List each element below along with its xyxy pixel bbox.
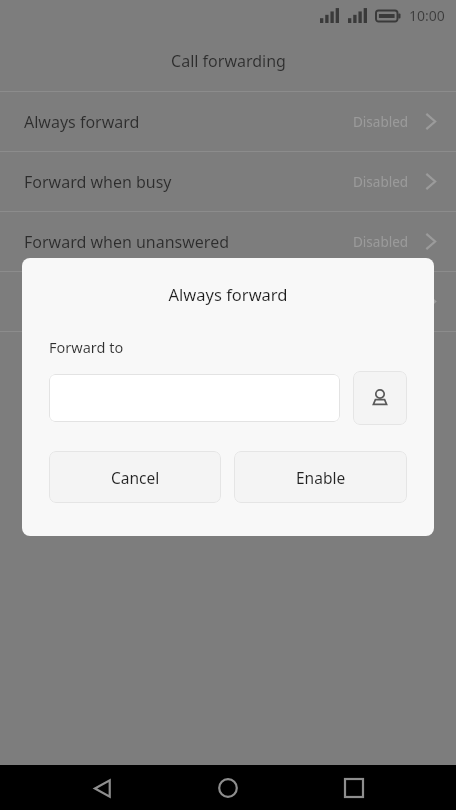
- button[interactable]: Recent apps: [332, 766, 376, 810]
- button[interactable]: Forward when unanswered: [0, 212, 456, 271]
- staticText: Forward when busy: [24, 171, 172, 193]
- button[interactable]: Cancel: [49, 451, 221, 503]
- staticText: Forward when unanswered: [24, 231, 230, 253]
- button[interactable]: Enable: [234, 451, 407, 503]
- button[interactable]: Always forward: [0, 92, 456, 151]
- button[interactable]: Forward when busy: [0, 152, 456, 211]
- staticText: Cancel: [111, 467, 160, 488]
- button[interactable]: [0, 272, 456, 331]
- button[interactable]: Home: [206, 766, 250, 810]
- staticText: Always forward: [24, 111, 140, 133]
- staticText: Disabled: [353, 113, 409, 131]
- button[interactable]: Choose contact: [353, 371, 407, 425]
- button[interactable]: Back: [80, 766, 124, 810]
- staticText: Always forward: [22, 283, 434, 305]
- staticText: Enable: [296, 467, 346, 488]
- button[interactable]: Forward to number: [49, 374, 340, 422]
- staticText: Disabled: [353, 173, 409, 191]
- staticText: 10:00: [409, 6, 445, 25]
- staticText: Disabled: [353, 233, 409, 251]
- staticText: Forward to: [49, 337, 124, 357]
- staticText: Call forwarding: [171, 50, 286, 72]
